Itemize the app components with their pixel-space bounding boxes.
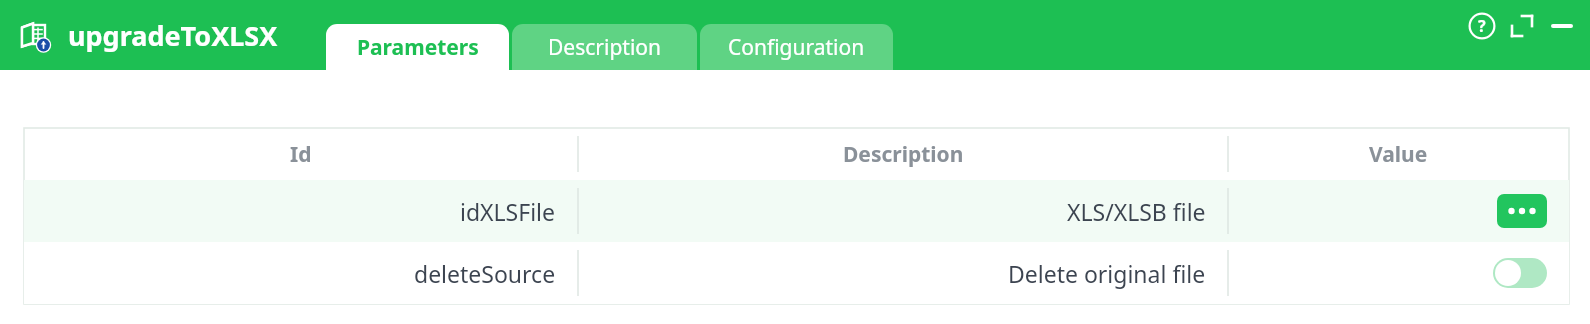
button[interactable]: deleteSource — [24, 242, 1569, 304]
staticText: idXLSFile — [460, 196, 556, 227]
button[interactable]: More options — [1497, 194, 1547, 228]
staticText: Configuration — [728, 33, 865, 62]
staticText: upgradeToXLSX — [68, 17, 278, 54]
staticText: XLS/XLSB file — [1067, 196, 1206, 227]
staticText: Delete original file — [1008, 258, 1206, 289]
staticText: Description — [843, 140, 964, 169]
button[interactable]: Minimize — [1544, 8, 1580, 44]
button[interactable]: Delete original file toggle — [1493, 258, 1547, 288]
button[interactable]: Help — [1464, 8, 1500, 44]
staticText: ? — [1478, 15, 1486, 37]
staticText: Description — [548, 33, 662, 62]
other: Upgrade to XLSX — [14, 15, 54, 55]
button[interactable]: idXLSFile — [24, 180, 1569, 242]
staticText: Value — [1369, 140, 1428, 169]
staticText: deleteSource — [414, 258, 556, 289]
button[interactable]: Description — [512, 24, 697, 70]
button[interactable]: Expand — [1504, 8, 1540, 44]
staticText: Id — [290, 140, 312, 169]
button[interactable]: Parameters — [326, 24, 509, 70]
staticText: Parameters — [357, 33, 479, 62]
button[interactable]: Configuration — [700, 24, 893, 70]
